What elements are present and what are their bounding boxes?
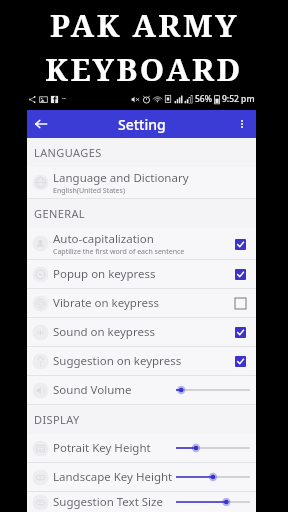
button[interactable]: Slider (176, 492, 250, 512)
button[interactable]: Vibrate on keypress (27, 289, 256, 317)
staticText: Sound Volume (53, 382, 132, 398)
staticText: KEYBOARD (45, 48, 243, 88)
button[interactable]: Checked (230, 351, 250, 371)
button[interactable]: Popup on keypress (27, 260, 256, 288)
button[interactable]: Slider (176, 380, 250, 400)
staticText: Language and Dictionary (53, 170, 189, 186)
button[interactable]: Landscape Key Height (27, 463, 256, 491)
staticText: English(United States) (53, 186, 125, 196)
button[interactable]: Suggestion on keypress (27, 347, 256, 375)
button[interactable]: Sound Volume (27, 376, 256, 404)
staticText: Vibrate on keypress (53, 295, 159, 311)
staticText: 56% (195, 93, 212, 105)
button[interactable]: Auto-capitalization (27, 228, 256, 259)
button[interactable]: Back (27, 110, 55, 138)
button[interactable]: Suggestion Text Size (27, 492, 256, 512)
staticText: ·· (62, 94, 66, 104)
button[interactable]: Checked (230, 234, 250, 254)
button[interactable]: Unchecked (230, 293, 250, 313)
button[interactable]: Slider (176, 438, 250, 458)
staticText: LANGUAGES (34, 145, 102, 160)
staticText: PAK ARMY (50, 4, 239, 46)
staticText: Landscape Key Height (53, 469, 173, 485)
staticText: Auto-capitalization (53, 231, 154, 247)
staticText: 9:52 pm (222, 93, 255, 105)
button[interactable]: Language and Dictionary (27, 167, 256, 198)
staticText: Popup on keypress (53, 266, 156, 282)
button[interactable]: More options (228, 110, 256, 138)
staticText: DISPLAY (34, 412, 80, 427)
button[interactable]: Checked (230, 322, 250, 342)
staticText: Setting (118, 115, 166, 134)
staticText: Potrait Key Height (53, 440, 151, 456)
staticText: Sound on keypress (53, 324, 155, 340)
button[interactable]: Sound on keypress (27, 318, 256, 346)
button[interactable]: Checked (230, 264, 250, 284)
staticText: GENERAL (34, 206, 86, 221)
staticText: Suggestion Text Size (53, 494, 163, 510)
button[interactable]: Slider (176, 467, 250, 487)
staticText: Suggestion on keypress (53, 353, 182, 369)
button[interactable]: Potrait Key Height (27, 434, 256, 462)
staticText: Captilize the first word of each sentenc… (53, 247, 185, 257)
